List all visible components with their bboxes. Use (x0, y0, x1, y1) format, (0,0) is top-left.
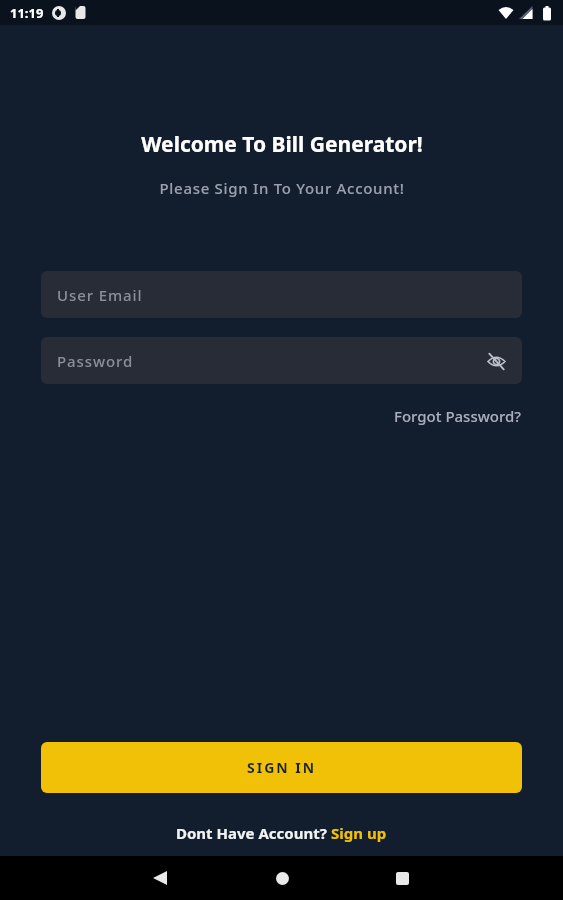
button[interactable] (268, 864, 296, 892)
button[interactable]: SIGN IN (41, 742, 522, 793)
staticText: Please Sign In To Your Account! (159, 178, 405, 198)
button[interactable]: Password (41, 337, 522, 384)
staticText: SIGN IN (247, 758, 317, 777)
button[interactable]: Sign up (331, 823, 387, 843)
staticText: Password (57, 351, 134, 371)
staticText: User Email (57, 285, 143, 305)
staticText: 11:19 (10, 4, 44, 22)
button[interactable] (484, 349, 508, 373)
button[interactable] (388, 864, 416, 892)
button[interactable] (146, 864, 174, 892)
button[interactable]: Forgot Password? (394, 406, 522, 426)
staticText: Welcome To Bill Generator! (141, 130, 423, 158)
staticText: Dont Have Account? (176, 823, 331, 843)
button[interactable]: User Email (41, 271, 522, 318)
